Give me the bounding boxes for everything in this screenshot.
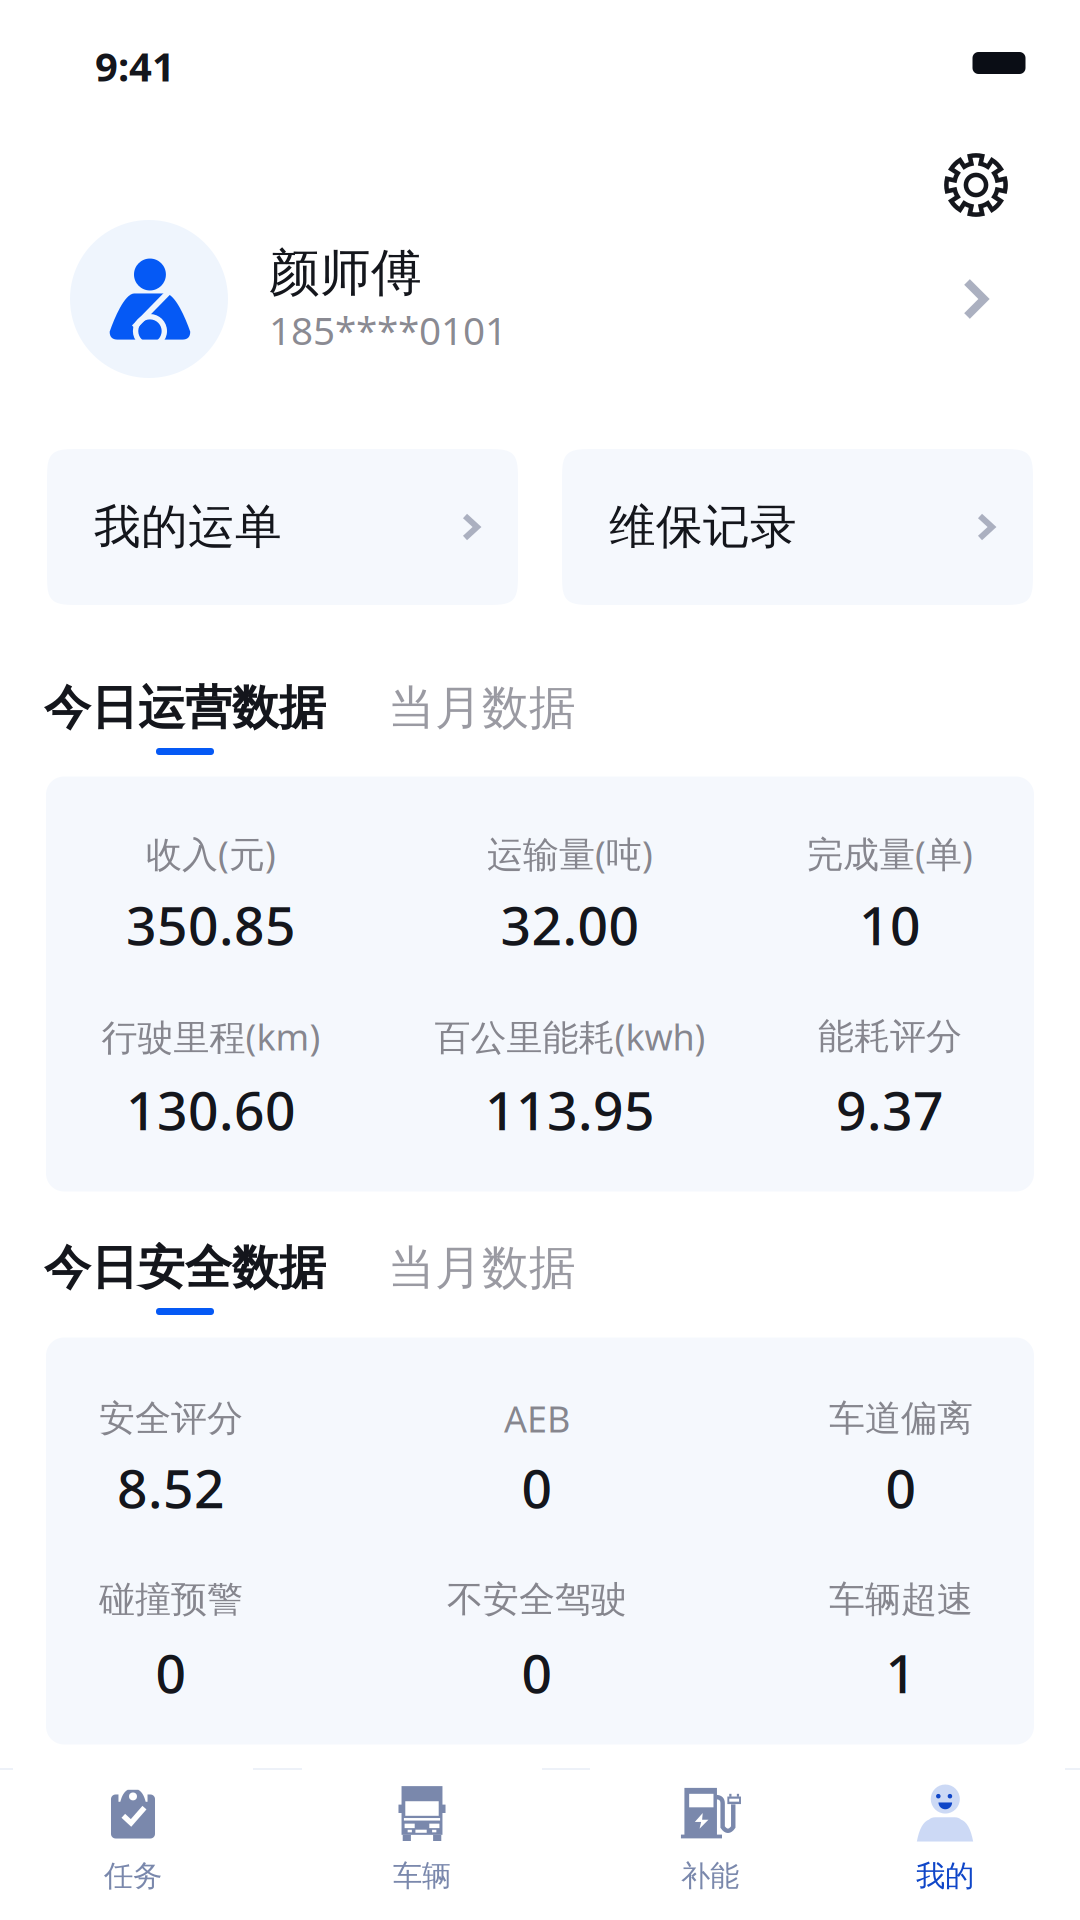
staticText: 当月数据: [388, 1239, 576, 1297]
button[interactable]: 今日安全数据: [45, 1237, 325, 1315]
staticText: 130.60: [126, 1074, 296, 1145]
staticText: AEB: [504, 1395, 570, 1442]
staticText: 维保记录: [609, 498, 797, 556]
staticText: 补能: [681, 1858, 739, 1894]
staticText: 10: [859, 889, 921, 960]
staticText: 我的运单: [94, 498, 282, 556]
staticText: 行驶里程(km): [101, 1013, 320, 1060]
button[interactable]: 颜师傅: [0, 215, 1080, 383]
button[interactable]: 当月数据: [388, 677, 576, 739]
staticText: 当月数据: [388, 679, 576, 737]
staticText: 车辆: [393, 1858, 451, 1894]
button[interactable]: 补能: [590, 1768, 830, 1918]
button[interactable]: 车辆: [302, 1768, 542, 1918]
staticText: 安全评分: [99, 1396, 243, 1441]
staticText: 今日运营数据: [44, 679, 326, 737]
staticText: 收入(元): [146, 830, 276, 877]
staticText: 碰撞预警: [99, 1577, 243, 1622]
staticText: 完成量(单): [807, 830, 973, 877]
staticText: 9.37: [836, 1074, 944, 1145]
staticText: 颜师傅: [269, 242, 422, 304]
button[interactable]: 维保记录: [562, 449, 1033, 605]
staticText: 任务: [104, 1858, 162, 1894]
button[interactable]: Settings: [928, 137, 1024, 233]
staticText: 不安全驾驶: [447, 1577, 627, 1622]
staticText: 0: [155, 1637, 186, 1708]
staticText: 能耗评分: [818, 1014, 962, 1059]
staticText: 113.95: [485, 1074, 655, 1145]
staticText: 百公里能耗(kwh): [434, 1013, 705, 1060]
staticText: 32.00: [500, 889, 639, 960]
staticText: 我的: [916, 1858, 974, 1894]
staticText: 1: [885, 1637, 916, 1708]
staticText: 8.52: [117, 1452, 225, 1523]
button[interactable]: 我的运单: [47, 449, 518, 605]
staticText: 运输量(吨): [487, 830, 653, 877]
staticText: 0: [521, 1452, 552, 1523]
staticText: 0: [521, 1637, 552, 1708]
button[interactable]: 任务: [13, 1768, 253, 1918]
staticText: 350.85: [126, 889, 296, 960]
staticText: 9:41: [95, 39, 175, 92]
staticText: 车辆超速: [829, 1577, 973, 1622]
button[interactable]: 今日运营数据: [45, 677, 325, 755]
staticText: 0: [885, 1452, 916, 1523]
button[interactable]: 当月数据: [388, 1237, 576, 1299]
button[interactable]: 我的: [825, 1768, 1065, 1918]
staticText: 185****0101: [269, 304, 507, 356]
staticText: 今日安全数据: [44, 1239, 326, 1297]
staticText: 车道偏离: [829, 1396, 973, 1441]
